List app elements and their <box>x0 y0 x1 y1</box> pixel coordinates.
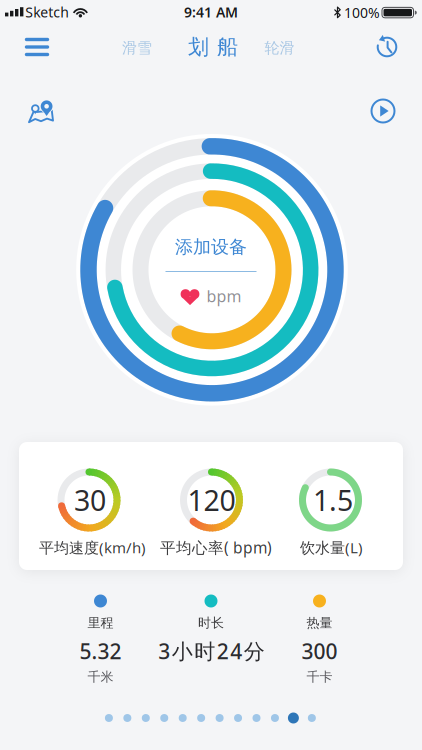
button[interactable]: 添加设备 <box>151 232 271 262</box>
button[interactable]: History <box>367 29 407 65</box>
staticText: 划船 <box>188 34 238 60</box>
staticText: 热量 <box>306 615 332 631</box>
staticText: 5.32 <box>79 637 121 665</box>
staticText: 300 <box>301 637 337 665</box>
staticText: bpm <box>206 285 241 307</box>
staticText: 3小时24分 <box>158 637 265 665</box>
button[interactable]: 划船 <box>180 28 246 66</box>
staticText: 滑雪 <box>122 39 152 57</box>
staticText: 添加设备 <box>175 236 247 258</box>
staticText: 120 <box>187 481 235 519</box>
button[interactable]: Map <box>20 93 60 133</box>
staticText: Sketch <box>25 2 69 22</box>
button[interactable]: 轮滑 <box>253 30 305 66</box>
staticText: 平均心率( bpm) <box>160 537 272 558</box>
staticText: 平均速度(km/h) <box>39 537 146 558</box>
staticText: 里程 <box>87 615 113 631</box>
button[interactable]: 滑雪 <box>111 30 163 66</box>
staticText: 1.5 <box>313 481 353 519</box>
staticText: 9:41 AM <box>184 2 238 22</box>
staticText: 饮水量(L) <box>300 537 363 558</box>
staticText: 千米 <box>87 669 113 685</box>
staticText: 千卡 <box>306 669 332 685</box>
staticText: 100% <box>344 3 380 22</box>
button[interactable]: Menu <box>17 29 57 65</box>
button[interactable]: Play <box>363 91 403 131</box>
staticText: 时长 <box>198 615 224 631</box>
staticText: 30 <box>74 481 106 519</box>
staticText: 轮滑 <box>264 39 294 57</box>
